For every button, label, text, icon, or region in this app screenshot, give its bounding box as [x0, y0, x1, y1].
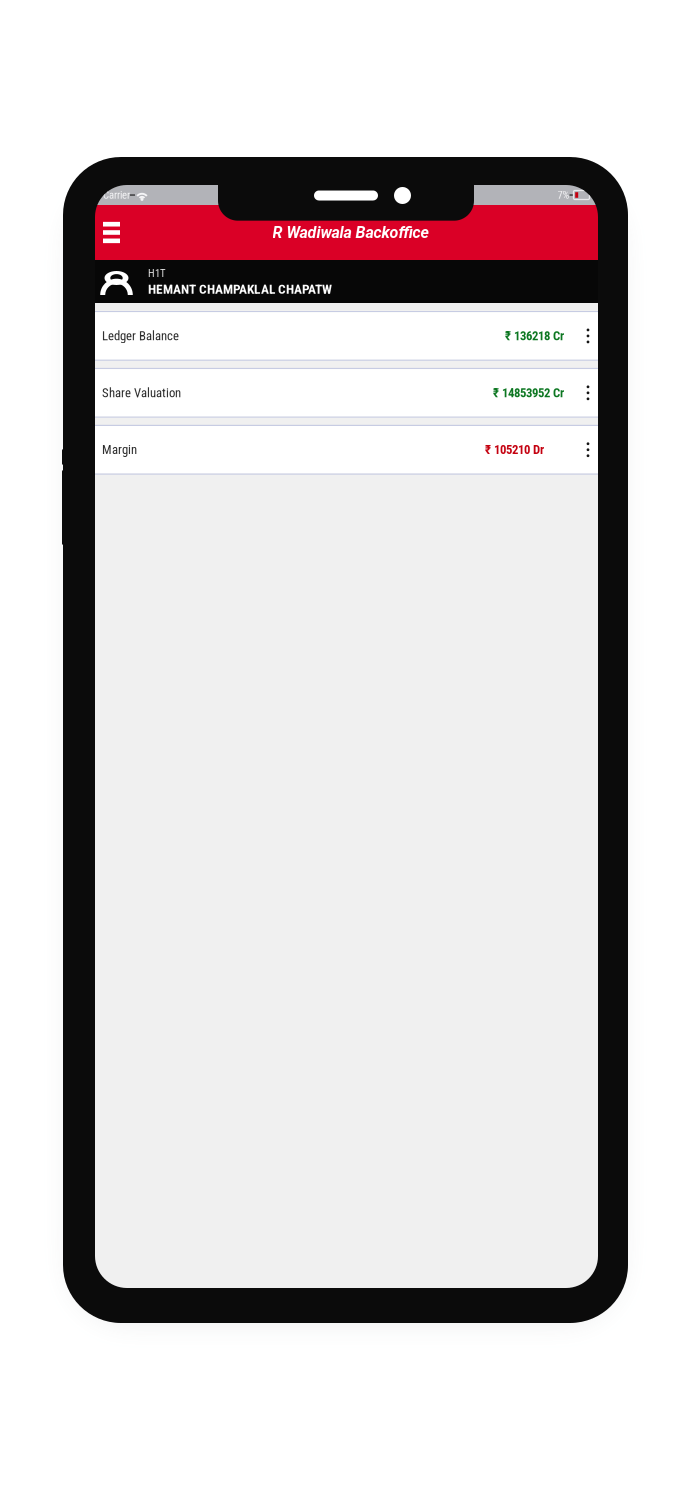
- staticText: 7%: [557, 189, 569, 201]
- staticText: Share Valuation: [102, 385, 181, 400]
- button[interactable]: Menu: [95, 205, 128, 260]
- button[interactable]: H1T: [95, 260, 598, 303]
- staticText: ₹ 14853952 Cr: [493, 385, 564, 400]
- staticText: Margin: [102, 442, 137, 457]
- staticText: Ledger Balance: [102, 328, 179, 343]
- button[interactable]: Margin: [95, 426, 598, 473]
- staticText: R Wadiwala Backoffice: [272, 223, 428, 242]
- staticText: ₹ 136218 Cr: [505, 328, 564, 343]
- staticText: H1T: [148, 267, 166, 279]
- staticText: Carrier: [103, 189, 130, 201]
- button[interactable]: Ledger Balance: [95, 312, 598, 360]
- staticText: ₹ 105210 Dr: [485, 442, 544, 457]
- staticText: HEMANT CHAMPAKLAL CHAPATW: [148, 281, 332, 297]
- button[interactable]: Share Valuation: [95, 369, 598, 417]
